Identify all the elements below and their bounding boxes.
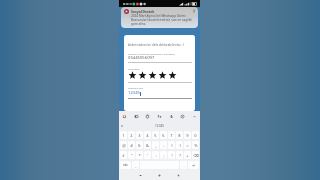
button[interactable]: Google [122, 114, 127, 119]
button[interactable]: Home [156, 172, 163, 179]
button[interactable]: Back [137, 172, 144, 179]
staticText: * [138, 153, 141, 158]
staticText: _ [155, 143, 157, 148]
staticText: = [186, 143, 189, 148]
staticText: , [135, 163, 137, 168]
staticText: + [186, 153, 189, 158]
staticText: ? [179, 153, 181, 158]
staticText: ! [171, 153, 173, 158]
staticText: Anketi sadece bir defa doldurabilirsiniz… [128, 43, 184, 47]
staticText: ↵ [192, 163, 196, 168]
staticText: " [131, 153, 133, 158]
staticText: abc [123, 163, 128, 167]
staticText: - [163, 143, 165, 148]
button[interactable]: Rate 5 stars [168, 71, 177, 80]
staticText: ) [179, 143, 181, 148]
staticText: @ [122, 143, 126, 148]
button[interactable]: Settings [180, 114, 185, 119]
staticText: ( [171, 143, 173, 148]
staticText: ₺ [138, 143, 141, 148]
staticText: 2024 Mart Ayina Izin Whatsapp Islemi Bas… [131, 14, 192, 26]
button[interactable]: 3 [136, 131, 143, 139]
button[interactable]: Themes [134, 114, 139, 119]
button[interactable]: ↵ [188, 161, 199, 169]
button[interactable]: Rate 3 stars [148, 71, 157, 80]
staticText: 7 [170, 133, 173, 138]
button[interactable]: 9 [184, 131, 191, 139]
button[interactable]: 7 [168, 131, 175, 139]
staticText: ' [147, 153, 148, 158]
staticText: 8 [178, 133, 181, 138]
button[interactable]: ⌫ [192, 151, 199, 159]
staticText: 6 [162, 133, 165, 138]
button[interactable]: : [152, 151, 159, 159]
button[interactable]: - [160, 141, 167, 149]
button[interactable]: More [192, 114, 197, 119]
button[interactable]: ! [168, 151, 175, 159]
button[interactable]: ( [168, 141, 175, 149]
button[interactable]: 2 [128, 131, 135, 139]
button[interactable]: % [192, 141, 199, 149]
staticText: & [146, 143, 149, 148]
staticText: 12345 [155, 124, 165, 128]
button[interactable]: ≠ [120, 151, 127, 159]
staticText: 0 [194, 133, 197, 138]
button[interactable]: + [184, 151, 191, 159]
button[interactable]: abc [120, 161, 131, 169]
button[interactable]: * [136, 151, 143, 159]
button[interactable]: Close suggestions [120, 124, 124, 128]
staticText: % [194, 143, 198, 148]
button[interactable]: Sosyal Destek [121, 7, 198, 28]
button[interactable]: 4 [144, 131, 151, 139]
button[interactable]: " [128, 151, 135, 159]
button[interactable]: Rate 4 stars [158, 71, 167, 80]
button[interactable]: Clipboard [145, 114, 150, 119]
button[interactable]: 8 [176, 131, 183, 139]
staticText: 12345 [128, 90, 140, 96]
button[interactable]: 1 [120, 131, 127, 139]
button[interactable]: Rate 1 stars [128, 71, 137, 80]
staticText: 3 [138, 133, 141, 138]
staticText: . [183, 163, 185, 168]
staticText: 4 [146, 133, 149, 138]
button[interactable]: & [144, 141, 151, 149]
staticText: : [155, 153, 157, 158]
button[interactable]: 5 [152, 131, 159, 139]
staticText: ≠ [122, 153, 125, 158]
button[interactable]: ) [176, 141, 183, 149]
staticText: Sosyal Destek [131, 9, 155, 14]
button[interactable]: 6 [160, 131, 167, 139]
button[interactable]: = [184, 141, 191, 149]
button[interactable]: ₺ [136, 141, 143, 149]
staticText: 1 [122, 133, 125, 138]
button[interactable]: @ [120, 141, 127, 149]
staticText: Puanlayin [128, 67, 140, 70]
staticText: # [130, 143, 133, 148]
button[interactable]: Rate 2 stars [138, 71, 147, 80]
button[interactable]: 0 [192, 131, 199, 139]
staticText: 9 [186, 133, 189, 138]
staticText: 5 [154, 133, 157, 138]
staticText: 2 [130, 133, 133, 138]
staticText: ; [163, 153, 165, 158]
staticText: Referans gns [128, 86, 144, 89]
button[interactable]: _ [152, 141, 159, 149]
button[interactable]: , [132, 161, 139, 169]
staticText: Telefon Numaraniz (Basinda 0 olmadan) [128, 52, 175, 55]
button[interactable]: # [128, 141, 135, 149]
button[interactable]: ? [176, 151, 183, 159]
button[interactable]: Recent apps [175, 172, 182, 179]
staticText: ⌫ [193, 153, 199, 158]
button[interactable]: Translate [157, 114, 162, 119]
button[interactable]: Voice input [169, 114, 174, 119]
staticText: 05445056097 [128, 55, 155, 61]
button[interactable]: ' [144, 151, 151, 159]
button[interactable]: Expand notification [192, 9, 196, 13]
button[interactable]: ; [160, 151, 167, 159]
